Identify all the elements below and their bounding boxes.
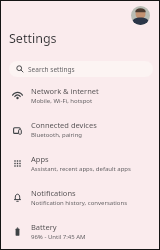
staticText: Settings — [9, 30, 57, 47]
staticText: Notification history, conversations — [31, 199, 128, 207]
staticText: Search settings — [28, 65, 75, 74]
button[interactable]: Battery — [1, 214, 159, 248]
button[interactable]: Search settings — [9, 61, 153, 77]
staticText: Mobile, Wi-Fi, hotspot — [31, 97, 93, 105]
staticText: Notifications — [31, 188, 76, 198]
staticText: Assistant, recent apps, default apps — [31, 165, 131, 173]
staticText: Bluetooth, pairing — [31, 131, 83, 139]
button[interactable]: Connected devices — [1, 112, 159, 146]
button[interactable] — [131, 6, 150, 25]
staticText: 96% - Until 7:45 AM — [31, 233, 86, 241]
button[interactable]: Network & internet — [1, 78, 159, 112]
staticText: Apps — [31, 154, 49, 164]
staticText: Connected devices — [31, 120, 97, 130]
button[interactable]: Apps — [1, 146, 159, 180]
staticText: Network & internet — [31, 86, 99, 96]
staticText: Battery — [31, 222, 57, 232]
button[interactable]: Notifications — [1, 180, 159, 214]
